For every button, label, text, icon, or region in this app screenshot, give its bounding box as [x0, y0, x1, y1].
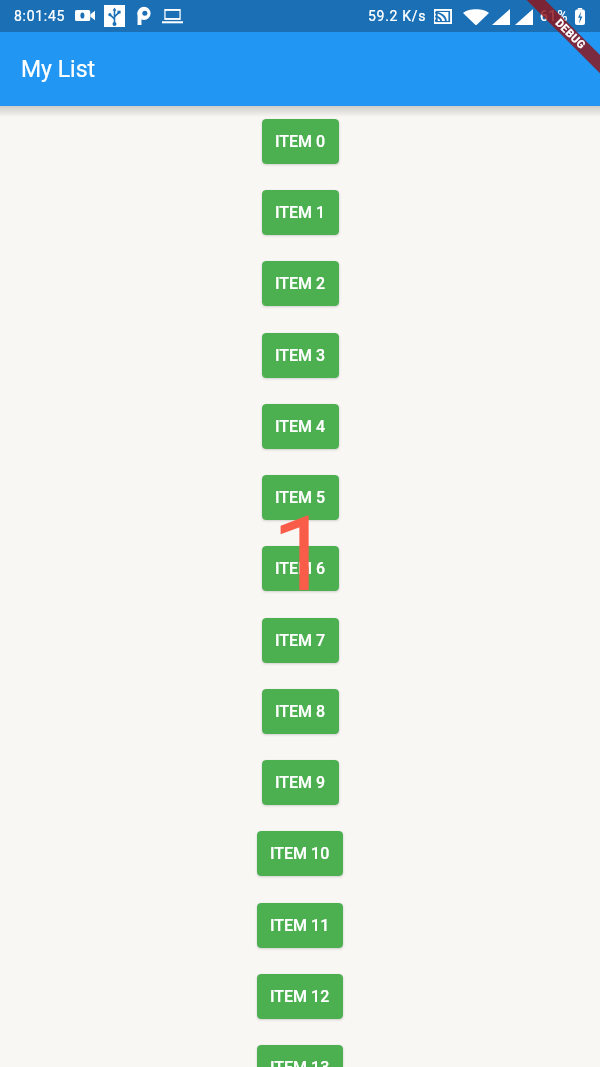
- staticText: 59.2 K/s: [368, 8, 427, 24]
- button[interactable]: ITEM 3: [262, 333, 339, 378]
- other: App notification: [137, 7, 151, 25]
- staticText: ITEM 7: [275, 631, 326, 650]
- staticText: My List: [21, 56, 96, 83]
- staticText: ITEM 6: [275, 559, 326, 578]
- staticText: ITEM 5: [275, 488, 326, 507]
- button[interactable]: ITEM 13: [257, 1045, 343, 1067]
- other: Cast: [434, 9, 452, 24]
- staticText: ITEM 2: [275, 274, 326, 293]
- button[interactable]: ITEM 10: [257, 831, 343, 876]
- other: Wi-Fi: [463, 8, 489, 25]
- button[interactable]: ITEM 9: [262, 760, 339, 805]
- staticText: ITEM 12: [270, 987, 330, 1006]
- staticText: DEBUG: [553, 16, 589, 52]
- other: Connected to computer: [162, 8, 183, 25]
- other: Debug banner: [500, 0, 600, 100]
- button[interactable]: ITEM 0: [262, 119, 339, 164]
- button[interactable]: ITEM 1: [262, 190, 339, 235]
- other: USB debugging: [104, 5, 125, 27]
- staticText: ITEM 11: [270, 916, 330, 935]
- button[interactable]: ITEM 2: [262, 261, 339, 306]
- other: Mobile signal: [492, 9, 510, 25]
- staticText: ITEM 4: [275, 417, 326, 436]
- button[interactable]: ITEM 11: [257, 903, 343, 948]
- button[interactable]: ITEM 8: [262, 689, 339, 734]
- staticText: 61%: [540, 8, 569, 24]
- staticText: ITEM 8: [275, 702, 326, 721]
- button[interactable]: ITEM 12: [257, 974, 343, 1019]
- staticText: ITEM 13: [270, 1058, 330, 1067]
- other: Screen recording: [75, 10, 95, 21]
- button[interactable]: ITEM 7: [262, 618, 339, 663]
- button[interactable]: ITEM 6: [262, 546, 339, 591]
- staticText: ITEM 9: [275, 773, 326, 792]
- button[interactable]: ITEM 5: [262, 475, 339, 520]
- button[interactable]: ITEM 4: [262, 404, 339, 449]
- staticText: 8:01:45: [14, 8, 66, 24]
- other: Mobile signal 2: [515, 9, 533, 25]
- staticText: ITEM 3: [275, 346, 326, 365]
- staticText: ITEM 10: [270, 844, 330, 863]
- staticText: ITEM 1: [275, 203, 326, 222]
- other: Battery charging: [575, 8, 585, 25]
- staticText: ITEM 0: [275, 132, 326, 151]
- staticText: 1: [272, 494, 330, 615]
